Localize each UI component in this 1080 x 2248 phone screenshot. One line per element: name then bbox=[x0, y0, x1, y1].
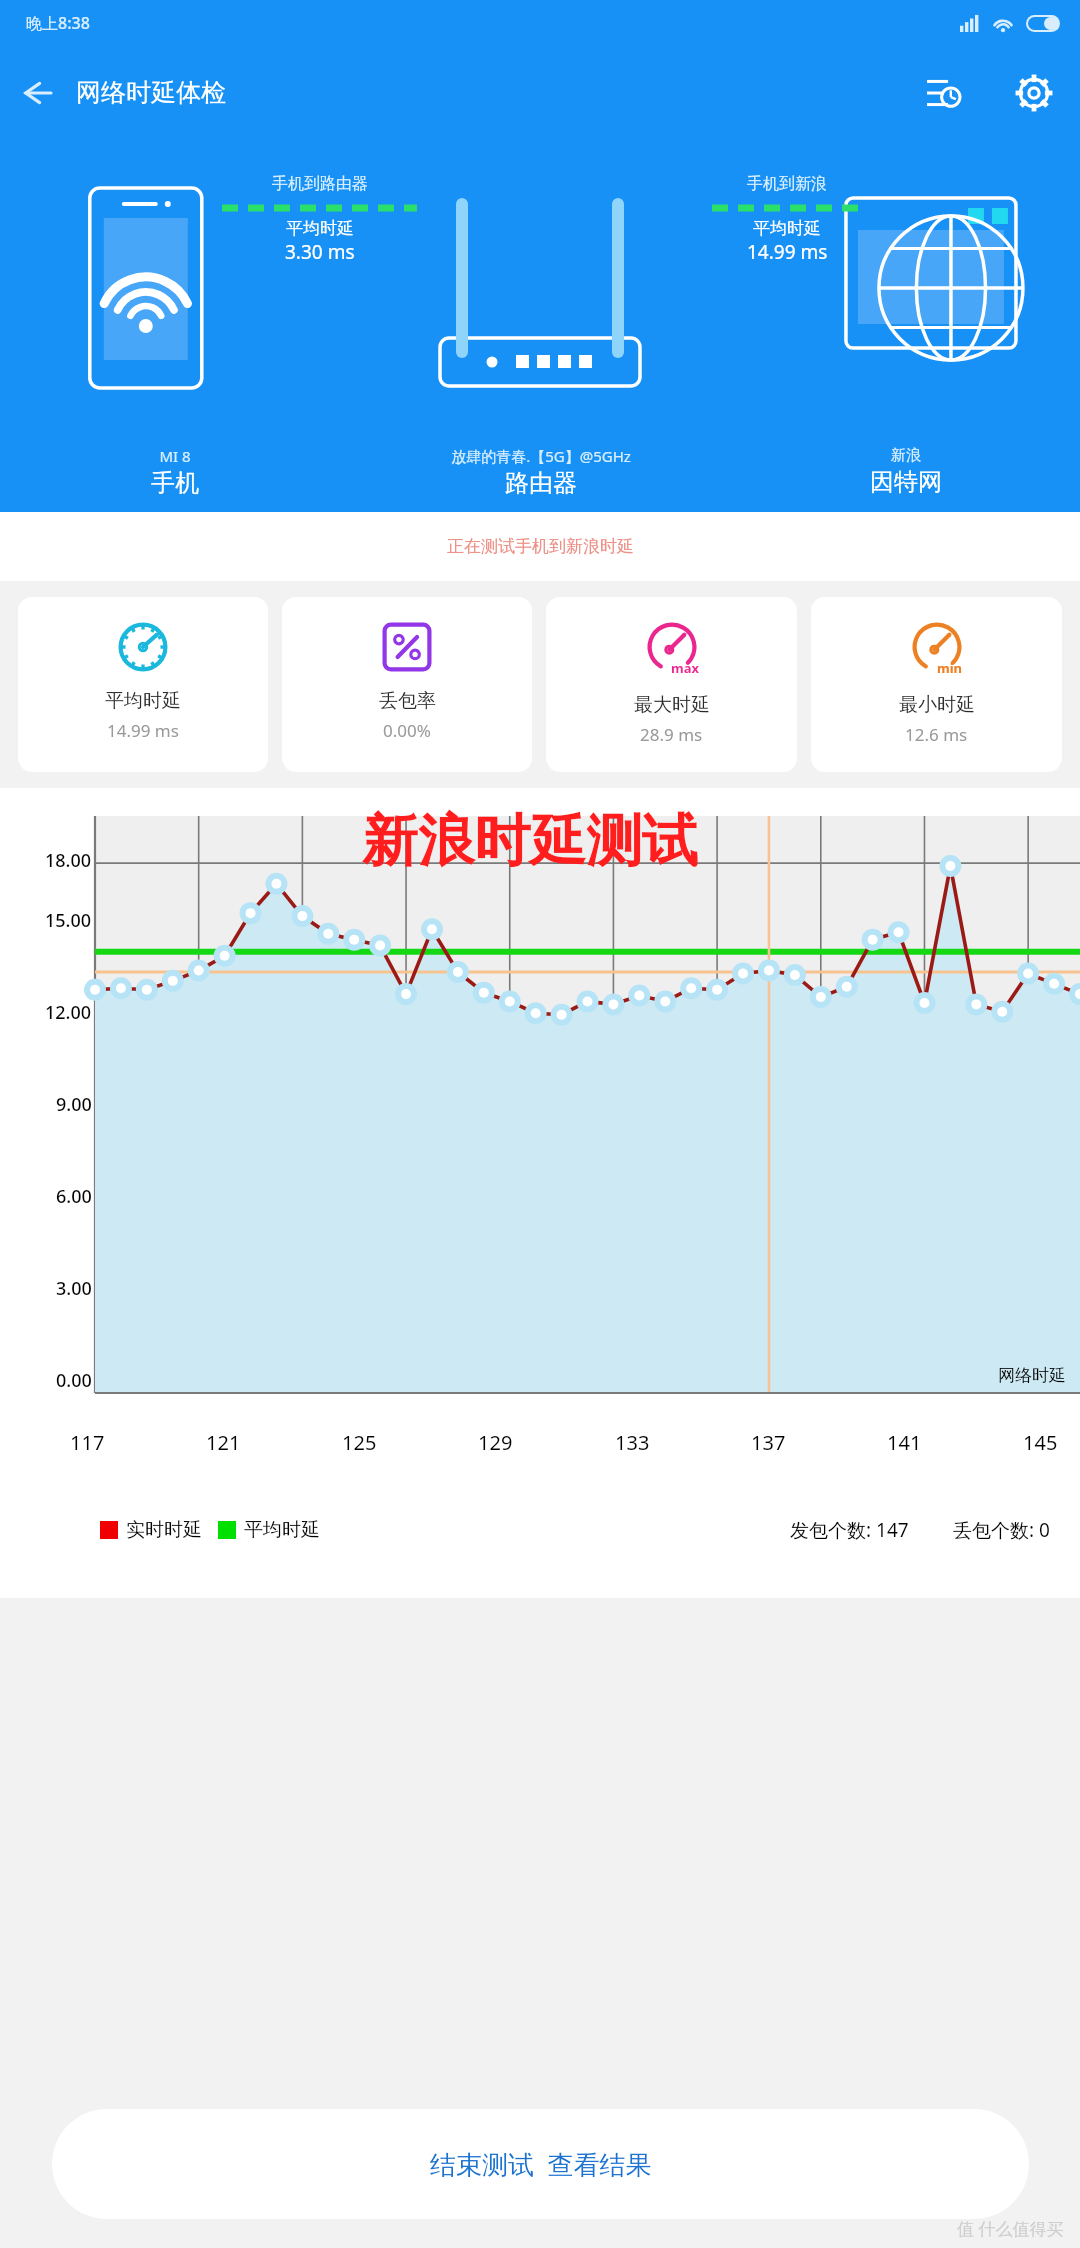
staticText: 网络时延体检 bbox=[76, 77, 226, 108]
staticText: 12.6 ms bbox=[905, 723, 968, 746]
staticText: 15.00 bbox=[45, 908, 92, 933]
staticText: max bbox=[671, 659, 699, 677]
staticText: 12.00 bbox=[45, 1000, 92, 1025]
staticText: 手机到路由器 bbox=[272, 174, 368, 194]
staticText: 129 bbox=[478, 1429, 513, 1456]
button[interactable]: 平均时延 bbox=[18, 597, 268, 772]
button[interactable]: Back bbox=[0, 57, 72, 129]
staticText: 丢包个数: 0 bbox=[953, 1517, 1050, 1543]
staticText: 平均时延 bbox=[105, 689, 181, 713]
button[interactable]: 结束测试 查看结果 bbox=[52, 2109, 1029, 2219]
staticText: 最小时延 bbox=[899, 693, 975, 717]
staticText: 丢包率 bbox=[379, 689, 436, 713]
staticText: 新浪时延测试 bbox=[362, 806, 698, 877]
staticText: MI 8 bbox=[159, 446, 191, 466]
staticText: 0.00 bbox=[56, 1368, 92, 1393]
staticText: 实时时延 bbox=[126, 1518, 202, 1542]
staticText: 28.9 ms bbox=[640, 723, 703, 746]
staticText: 3.00 bbox=[56, 1276, 92, 1301]
staticText: 结束测试 查看结果 bbox=[430, 2146, 652, 2182]
staticText: 平均时延 bbox=[244, 1518, 320, 1542]
staticText: 因特网 bbox=[870, 467, 942, 497]
staticText: 3.30 ms bbox=[285, 239, 355, 265]
staticText: 值 什么值得买 bbox=[957, 2217, 1064, 2240]
staticText: 18.00 bbox=[45, 848, 92, 873]
staticText: 手机到新浪 bbox=[747, 174, 827, 194]
staticText: 9.00 bbox=[56, 1092, 92, 1117]
button[interactable]: History bbox=[900, 49, 988, 137]
staticText: 14.99 ms bbox=[747, 239, 828, 265]
staticText: 145 bbox=[1023, 1429, 1058, 1456]
staticText: 平均时延 bbox=[753, 218, 821, 239]
staticText: 路由器 bbox=[505, 468, 577, 498]
staticText: 网络时延 bbox=[998, 1365, 1066, 1386]
button[interactable]: 丢包率 bbox=[282, 597, 532, 772]
staticText: 平均时延 bbox=[286, 218, 354, 239]
staticText: 最大时延 bbox=[634, 693, 710, 717]
staticText: 新浪 bbox=[891, 446, 921, 465]
staticText: 正在测试手机到新浪时延 bbox=[447, 536, 634, 557]
staticText: 125 bbox=[342, 1429, 377, 1456]
staticText: 手机 bbox=[151, 468, 199, 498]
staticText: 14.99 ms bbox=[107, 719, 179, 742]
staticText: 发包个数: 147 bbox=[790, 1517, 909, 1543]
button[interactable]: max bbox=[546, 597, 797, 772]
staticText: 放肆的青春.【5G】@5GHz bbox=[451, 446, 631, 466]
staticText: 117 bbox=[70, 1429, 105, 1456]
staticText: 0.00% bbox=[383, 719, 431, 742]
button[interactable]: min bbox=[811, 597, 1062, 772]
staticText: 141 bbox=[887, 1429, 922, 1456]
button[interactable]: Settings bbox=[988, 47, 1080, 139]
staticText: 133 bbox=[615, 1429, 650, 1456]
staticText: 6.00 bbox=[56, 1184, 92, 1209]
staticText: 晚上8:38 bbox=[26, 12, 90, 34]
staticText: min bbox=[937, 659, 963, 677]
staticText: 137 bbox=[751, 1429, 786, 1456]
staticText: 121 bbox=[206, 1429, 241, 1456]
